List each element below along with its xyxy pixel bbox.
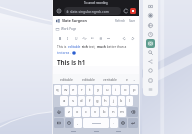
button[interactable]: Stop recording (130, 8, 136, 14)
button[interactable]: capture (146, 11, 155, 20)
button[interactable]: k (118, 96, 125, 106)
staticText: editable (68, 45, 81, 49)
staticText: editable (60, 77, 73, 82)
button[interactable]: editable (55, 74, 77, 84)
button[interactable]: g (94, 96, 101, 106)
button[interactable]: veritable (99, 74, 121, 84)
button[interactable]: a (60, 96, 68, 106)
staticText: k (120, 98, 123, 104)
staticText: t (89, 87, 91, 93)
button[interactable]: z (65, 107, 72, 117)
staticText: o (124, 87, 127, 93)
button[interactable]: n (109, 107, 117, 117)
button[interactable]: redo (128, 34, 136, 42)
button[interactable]: U (72, 34, 80, 42)
button[interactable] (83, 118, 109, 128)
button[interactable]: slate.singular.ngrok.com (64, 7, 121, 15)
staticText: rich (81, 45, 88, 49)
button[interactable]: clock (146, 30, 155, 39)
button[interactable]: i (112, 85, 120, 95)
staticText: z (68, 109, 70, 115)
staticText: c (85, 109, 88, 115)
button[interactable]: Save (129, 19, 136, 23)
staticText: d (80, 98, 83, 104)
button[interactable]: l (126, 96, 133, 106)
staticText: textarea (57, 51, 70, 55)
button[interactable]: Reload (123, 8, 129, 14)
button[interactable]: p (130, 85, 138, 95)
staticText: e (72, 87, 75, 93)
button[interactable]: globe (146, 21, 155, 30)
button[interactable]: camera (146, 39, 155, 48)
button[interactable]: list (96, 34, 104, 42)
staticText: U (75, 36, 78, 41)
button[interactable]: enter (128, 118, 138, 128)
staticText: m (120, 109, 124, 115)
button[interactable]: t (86, 85, 93, 95)
staticText: . (70, 51, 71, 55)
button[interactable]: B (56, 34, 64, 42)
staticText: text, (88, 45, 97, 49)
staticText: u (106, 87, 109, 93)
staticText: . (113, 120, 115, 126)
staticText: veritable (103, 77, 117, 82)
button[interactable]: Tabs (56, 8, 62, 14)
button[interactable]: s (69, 96, 77, 106)
staticText: This is (57, 45, 68, 49)
staticText: e (126, 77, 128, 82)
staticText: I (67, 36, 69, 41)
button[interactable]: q (54, 85, 61, 95)
button[interactable]: . (110, 118, 118, 128)
button[interactable]: quote (88, 34, 96, 42)
button[interactable]: f (86, 96, 93, 106)
staticText: f (89, 98, 91, 104)
button[interactable]: undo (120, 34, 128, 42)
button[interactable]: search (146, 48, 155, 57)
button[interactable]: d (78, 96, 85, 106)
button[interactable]: dash (104, 34, 112, 42)
button[interactable]: link (80, 34, 88, 42)
staticText: better than a (106, 45, 127, 49)
button[interactable]: v (91, 107, 99, 117)
staticText: g (96, 98, 99, 104)
button[interactable]: sym (54, 118, 64, 128)
button[interactable]: Refresh (115, 19, 126, 23)
staticText: a (63, 98, 66, 104)
button[interactable]: lang (119, 118, 127, 128)
button[interactable]: shift (54, 107, 64, 117)
button[interactable]: editable (77, 74, 99, 84)
button[interactable]: h (102, 96, 109, 106)
button[interactable]: b (100, 107, 108, 117)
staticText: B (59, 36, 62, 41)
button[interactable]: I (64, 34, 72, 42)
button[interactable]: backspace (127, 107, 138, 117)
button[interactable]: x (73, 107, 81, 117)
staticText: n (112, 109, 115, 115)
button[interactable]: emoji (65, 118, 73, 128)
button[interactable]: c (82, 107, 90, 117)
button[interactable]: more (146, 85, 155, 94)
staticText: i (115, 87, 117, 93)
button[interactable]: y (94, 85, 102, 95)
staticText: w (64, 87, 68, 93)
button[interactable]: e (70, 85, 77, 95)
button[interactable]: r (78, 85, 85, 95)
button[interactable]: record (146, 2, 155, 11)
button[interactable]: u (103, 85, 111, 95)
button[interactable]: , (74, 118, 82, 128)
button[interactable]: square (146, 76, 155, 85)
staticText: Work Page (61, 27, 77, 31)
button[interactable]: j (110, 96, 117, 106)
button[interactable]: m (118, 107, 126, 117)
staticText: p (133, 87, 136, 93)
button[interactable]: More suggestions (132, 74, 137, 84)
staticText: v (94, 109, 97, 115)
button[interactable]: o (121, 85, 129, 95)
button[interactable]: circle (146, 66, 155, 75)
button[interactable]: e (121, 74, 132, 84)
button[interactable]: w (62, 85, 69, 95)
button[interactable]: share (146, 57, 155, 66)
